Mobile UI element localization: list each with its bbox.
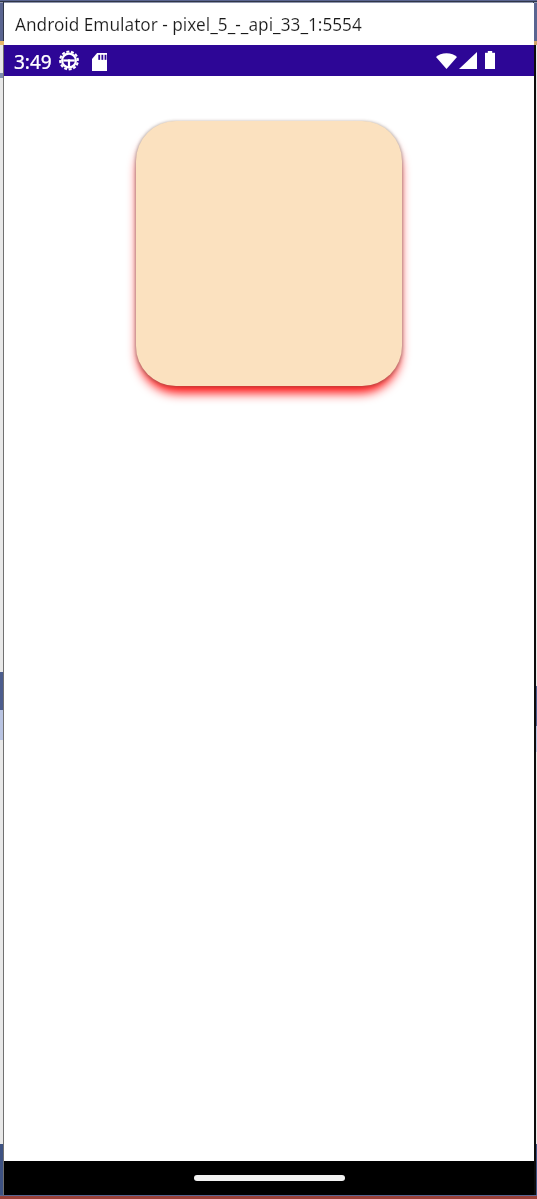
staticText: Android Emulator - pixel_5_-_api_33_1:55… [15,13,362,36]
staticText: 3:49 [14,49,52,75]
other: SD card [92,53,107,71]
other: Wi-Fi [436,52,457,69]
other: Mobile signal [459,52,477,69]
button[interactable] [136,121,402,386]
other: Battery [485,51,495,69]
button[interactable]: Home [194,1175,345,1181]
other: Developer options [59,50,79,71]
